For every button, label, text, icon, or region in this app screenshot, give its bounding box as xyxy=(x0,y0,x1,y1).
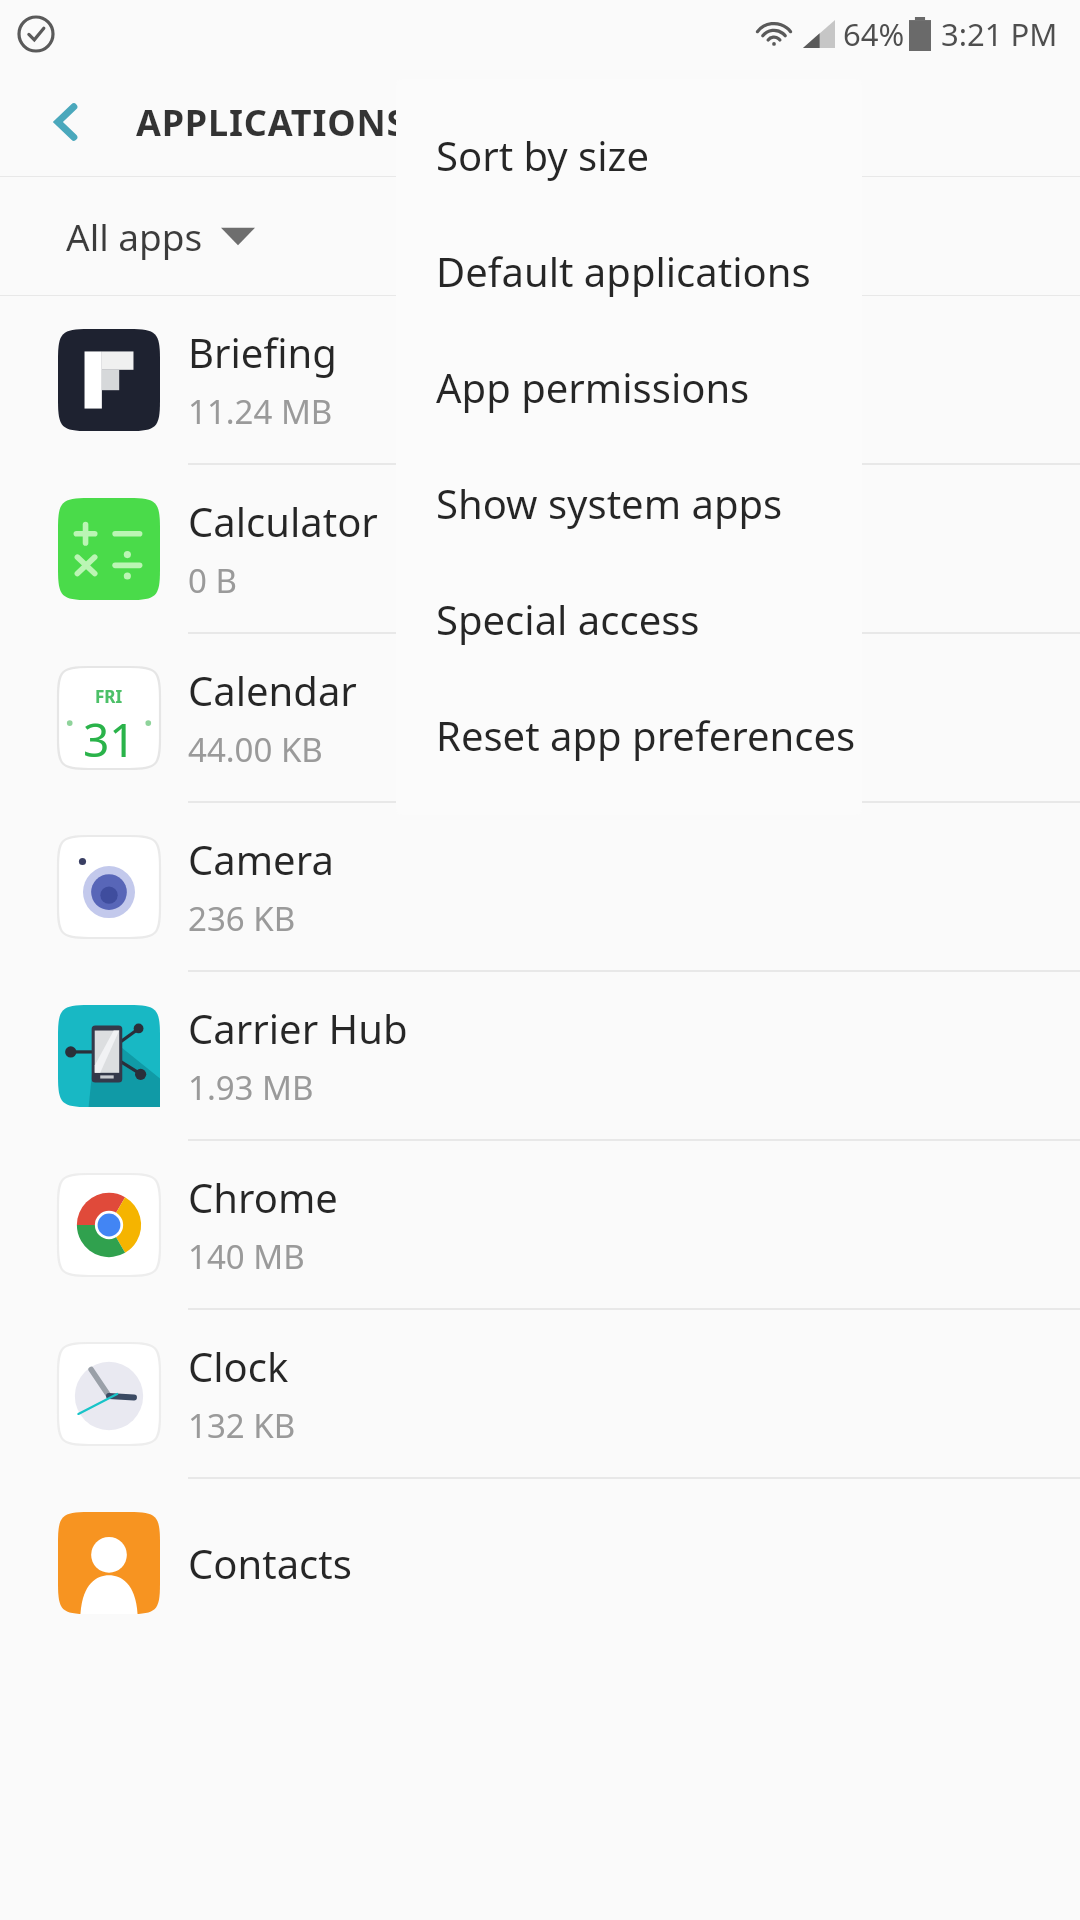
staticText: Clock xyxy=(188,1339,289,1393)
staticText: 64% xyxy=(843,13,905,55)
button[interactable]: FRI xyxy=(0,634,1080,801)
button[interactable]: Calculator xyxy=(0,465,1080,632)
button[interactable]: Contacts xyxy=(0,1479,1080,1646)
staticText: Briefing xyxy=(188,325,337,379)
button[interactable]: All apps xyxy=(0,177,1080,295)
staticText: 31 xyxy=(83,708,136,769)
staticText: Show system apps xyxy=(436,476,783,530)
button[interactable]: Clock xyxy=(0,1310,1080,1477)
button[interactable]: Show system apps xyxy=(396,445,862,561)
staticText: Special access xyxy=(436,592,700,646)
button[interactable]: Special access xyxy=(396,561,862,677)
staticText: Calendar xyxy=(188,663,357,717)
button[interactable]: App permissions xyxy=(396,329,862,445)
staticText: 3:21 PM xyxy=(941,13,1058,55)
button[interactable]: Briefing xyxy=(0,296,1080,463)
button[interactable]: Back xyxy=(30,85,104,159)
button[interactable]: Default applications xyxy=(396,213,862,329)
staticText: FRI xyxy=(95,685,123,708)
staticText: 140 MB xyxy=(188,1234,305,1279)
button[interactable]: Chrome xyxy=(0,1141,1080,1308)
staticText: Camera xyxy=(188,832,334,886)
button[interactable]: Sort by size xyxy=(396,97,862,213)
button[interactable]: Carrier Hub xyxy=(0,972,1080,1139)
staticText: 1.93 MB xyxy=(188,1065,314,1110)
staticText: 44.00 KB xyxy=(188,727,323,772)
staticText: Contacts xyxy=(188,1536,352,1590)
staticText: Carrier Hub xyxy=(188,1001,408,1055)
staticText: APPLICATIONS xyxy=(136,98,408,147)
staticText: 0 B xyxy=(188,558,237,603)
staticText: 132 KB xyxy=(188,1403,296,1448)
staticText: 11.24 MB xyxy=(188,389,333,434)
staticText: Sort by size xyxy=(436,128,649,182)
staticText: Default applications xyxy=(436,244,811,298)
staticText: App permissions xyxy=(436,360,750,414)
button[interactable]: Camera xyxy=(0,803,1080,970)
button[interactable]: Reset app preferences xyxy=(396,677,862,793)
staticText: All apps xyxy=(66,211,203,261)
staticText: Calculator xyxy=(188,494,378,548)
staticText: 236 KB xyxy=(188,896,296,941)
staticText: Reset app preferences xyxy=(436,708,856,762)
staticText: Chrome xyxy=(188,1170,338,1224)
